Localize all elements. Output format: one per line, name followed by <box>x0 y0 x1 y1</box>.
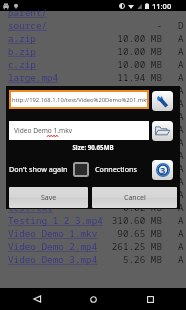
button[interactable]: Video Demo 3.mp4 <box>0 253 186 266</box>
staticText: Video Demo 1.mkv <box>8 227 98 240</box>
staticText: A <box>178 123 186 136</box>
staticText: large.mp4 <box>8 71 59 84</box>
button[interactable]: c.zip <box>0 58 186 71</box>
staticText: Testing 1 2 3.mp4 <box>8 214 103 227</box>
staticText: 5.00 MB <box>104 84 162 97</box>
button[interactable]: test.txt <box>0 201 186 214</box>
staticText: 90.65 MB <box>104 227 162 240</box>
staticText: source/ <box>8 19 48 32</box>
button[interactable]: Save <box>9 187 88 208</box>
button[interactable]: report.docx <box>0 110 186 123</box>
button[interactable]: b.zip <box>0 45 186 58</box>
staticText: A <box>178 71 186 84</box>
staticText: A <box>178 84 186 97</box>
button[interactable]: http://192.168.1.10/test/Video%20Demo%20… <box>9 90 149 109</box>
staticText: test.txt <box>8 201 53 214</box>
staticText: A <box>178 149 186 162</box>
staticText: 5.26 MB <box>104 253 162 266</box>
staticText: Size: 90.65MB <box>6 143 180 151</box>
staticText: something.pdf <box>8 97 81 110</box>
staticText: A <box>178 136 186 149</box>
button[interactable]: Recent apps <box>130 288 170 310</box>
button[interactable]: sample.iso <box>0 162 186 175</box>
button[interactable]: Back <box>17 288 57 310</box>
staticText: image 01.png <box>8 123 75 136</box>
button[interactable]: Video Demo 2.mp4 <box>0 240 186 253</box>
staticText: A <box>178 214 186 227</box>
staticText: D <box>178 19 186 32</box>
staticText: A <box>178 253 186 266</box>
staticText: A <box>178 162 186 175</box>
staticText: A <box>178 227 186 240</box>
button[interactable]: Connections <box>95 158 137 180</box>
staticText: 0.02 KB <box>104 201 162 214</box>
button[interactable]: parent/ <box>0 6 186 19</box>
staticText: sample.iso <box>8 162 64 175</box>
staticText: 10.00 MB <box>104 32 162 45</box>
staticText: A <box>178 97 186 110</box>
staticText: 2.10 MB <box>104 123 162 136</box>
button[interactable]: something.pdf <box>0 97 186 110</box>
staticText: Video Demo 2.mp4 <box>8 240 98 253</box>
staticText: Don't show again <box>9 164 68 174</box>
staticText: 10.00 MB <box>104 58 162 71</box>
staticText: A <box>178 188 186 201</box>
button[interactable]: Home <box>73 288 113 310</box>
staticText: 310.60 MB <box>104 214 162 227</box>
button[interactable]: music.mp3 <box>0 188 186 201</box>
button[interactable]: Don't show again <box>9 158 89 180</box>
staticText: 0.34 MB <box>104 110 162 123</box>
staticText: A <box>178 45 186 58</box>
button[interactable]: notes.zip <box>0 149 186 162</box>
staticText: 24.11 MB <box>104 175 162 188</box>
staticText: A <box>178 175 186 188</box>
button[interactable]: archive.tar <box>0 175 186 188</box>
staticText: A <box>178 58 186 71</box>
button[interactable]: Testing 1 2 3.mp4 <box>0 214 186 227</box>
staticText: A <box>178 201 186 214</box>
button[interactable]: Cancel <box>92 187 177 208</box>
button[interactable]: a.zip <box>0 32 186 45</box>
button[interactable]: Video Demo 1.mkv <box>0 227 186 240</box>
staticText <box>104 6 162 19</box>
staticText: 11:00 <box>152 1 172 11</box>
staticText: Video Demo 3.mp4 <box>8 253 98 266</box>
staticText: 642.00 MB <box>104 162 162 175</box>
button[interactable]: large.mp4 <box>0 71 186 84</box>
button[interactable]: Settings <box>152 91 173 111</box>
staticText: A <box>178 32 186 45</box>
staticText: A <box>178 110 186 123</box>
staticText: 10.00 MB <box>104 45 162 58</box>
staticText: small.mp4 <box>8 84 59 97</box>
staticText: A <box>178 240 186 253</box>
staticText: a.zip <box>8 32 36 45</box>
button[interactable]: Browse files <box>152 121 173 141</box>
button[interactable]: source/ <box>0 19 186 32</box>
staticText: c.zip <box>8 58 36 71</box>
staticText: Cancel <box>124 193 146 203</box>
staticText: image 02.png <box>8 136 75 149</box>
button[interactable]: small.mp4 <box>0 84 186 97</box>
staticText: 3 <box>160 164 166 177</box>
staticText: Save <box>41 193 57 203</box>
staticText: Connections <box>95 164 137 174</box>
staticText: b.zip <box>8 45 36 58</box>
staticText: 7.55 MB <box>104 149 162 162</box>
staticText: archive.tar <box>8 175 70 188</box>
button[interactable]: image 01.png <box>0 123 186 136</box>
staticText: 1.24 MB <box>104 97 162 110</box>
staticText: Video Demo 1.mkv <box>14 126 73 135</box>
staticText: 3.70 MB <box>104 136 162 149</box>
button[interactable]: Video Demo 1.mkv <box>9 121 149 140</box>
staticText: report.docx <box>8 110 70 123</box>
staticText <box>178 6 186 19</box>
staticText: 8.90 MB <box>104 188 162 201</box>
button[interactable]: Connection count <box>152 160 173 180</box>
staticText: 261.25 MB <box>104 240 162 253</box>
button[interactable]: image 02.png <box>0 136 186 149</box>
staticText: music.mp3 <box>8 188 59 201</box>
staticText: http://192.168.1.10/test/Video%20Demo%20… <box>12 96 149 104</box>
staticText: parent/ <box>8 6 48 19</box>
